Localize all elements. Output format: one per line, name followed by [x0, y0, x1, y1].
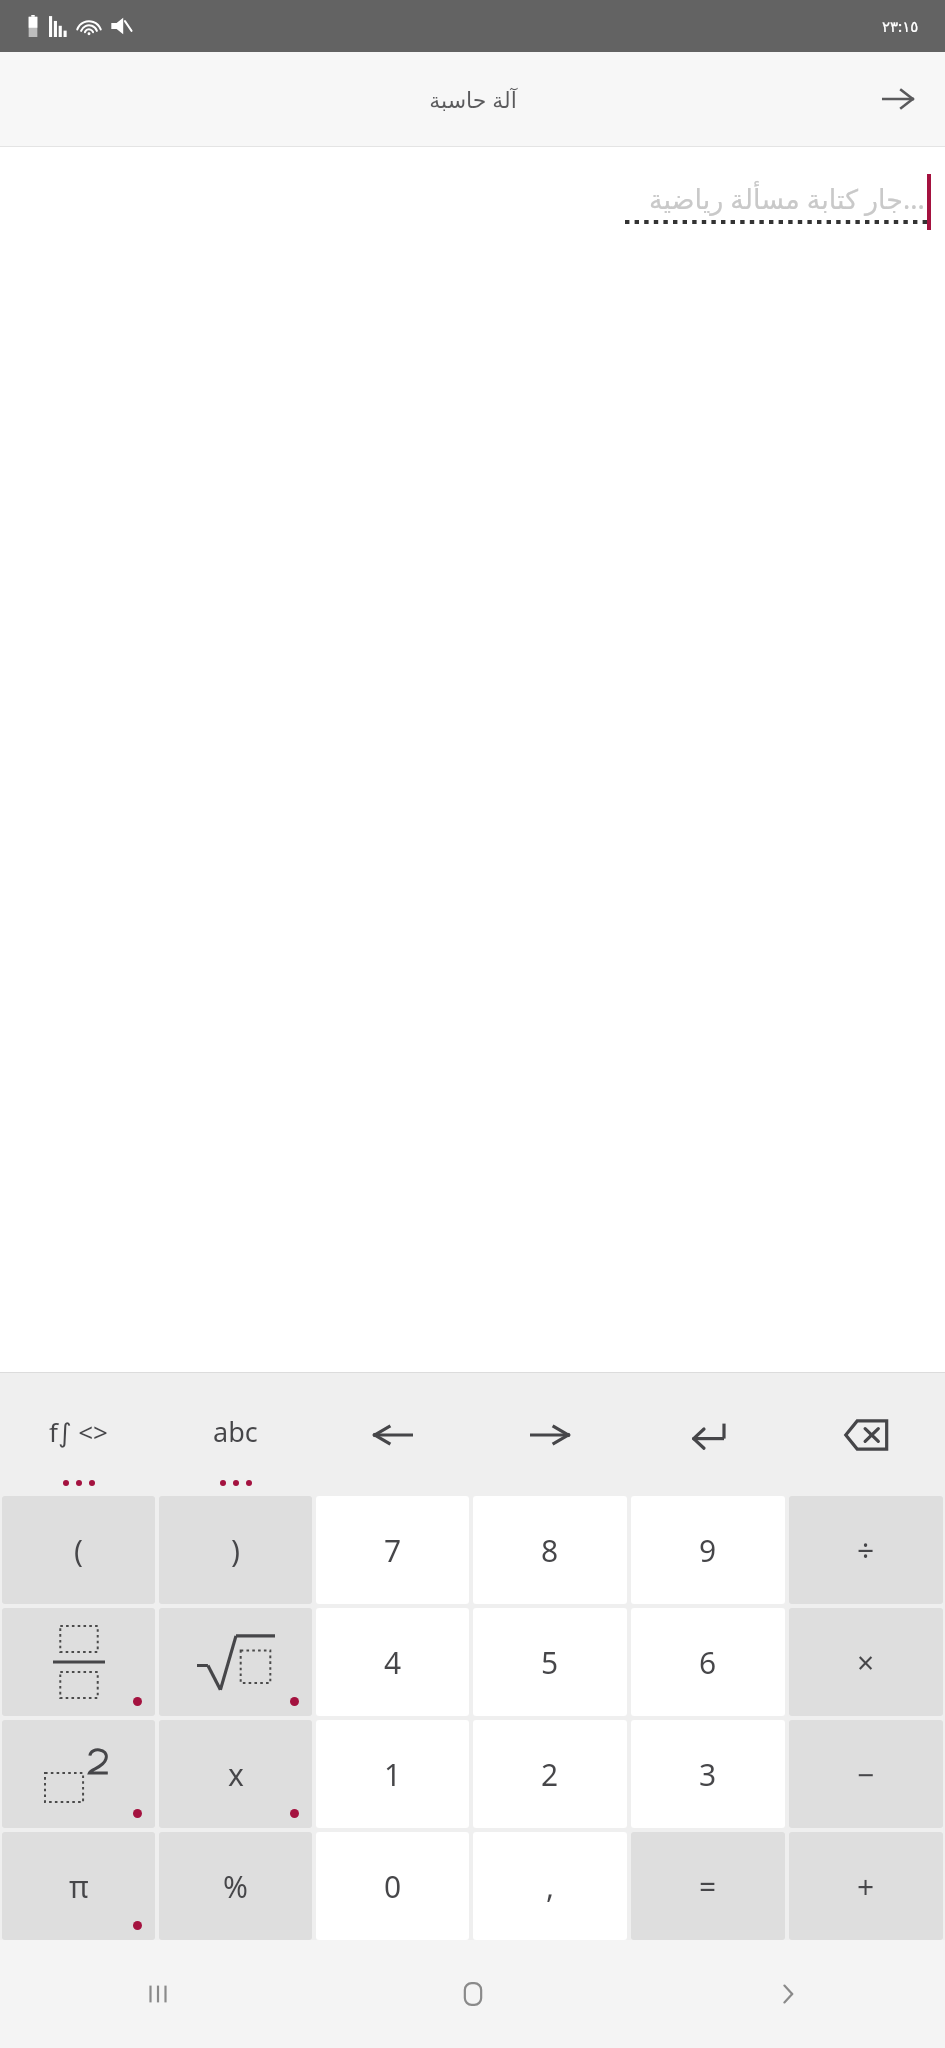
button[interactable]: (	[2, 1496, 155, 1604]
staticText: ×	[857, 1642, 875, 1683]
staticText: 1	[384, 1754, 402, 1795]
button[interactable]: Recents	[0, 1940, 315, 2048]
button[interactable]: Home	[315, 1940, 630, 2048]
button[interactable]: 7	[316, 1496, 469, 1604]
button[interactable]: Fraction	[2, 1608, 155, 1716]
button[interactable]: =	[631, 1832, 785, 1940]
staticText: x	[228, 1754, 244, 1795]
button[interactable]: Enter	[629, 1373, 787, 1496]
staticText: −	[857, 1754, 875, 1795]
button[interactable]: Square	[2, 1720, 155, 1828]
staticText: آلة حاسبة	[429, 84, 517, 114]
staticText: π	[69, 1866, 89, 1907]
button[interactable]: 3	[631, 1720, 785, 1828]
button[interactable]: x	[159, 1720, 312, 1828]
button[interactable]: +	[789, 1832, 943, 1940]
button[interactable]: 2	[473, 1720, 627, 1828]
staticText: ٢٣:١٥	[882, 16, 919, 36]
button[interactable]: −	[789, 1720, 943, 1828]
staticText: 7	[384, 1530, 402, 1571]
staticText: 9	[699, 1530, 717, 1571]
staticText: 6	[699, 1642, 717, 1683]
button[interactable]: f∫ <>	[0, 1373, 157, 1496]
button[interactable]: 5	[473, 1608, 627, 1716]
staticText: f∫ <>	[49, 1414, 108, 1449]
staticText: abc	[213, 1413, 258, 1450]
staticText: (	[74, 1530, 83, 1571]
button[interactable]: ×	[789, 1608, 943, 1716]
staticText: 4	[384, 1642, 402, 1683]
button[interactable]: 9	[631, 1496, 785, 1604]
button[interactable]: 4	[316, 1608, 469, 1716]
button[interactable]: Back	[630, 1940, 945, 2048]
button[interactable]: Next	[867, 68, 929, 130]
staticText: جار كتابة مسألة رياضية...	[649, 180, 925, 217]
staticText: +	[857, 1866, 875, 1907]
button[interactable]: 0	[316, 1832, 469, 1940]
button[interactable]: ÷	[789, 1496, 943, 1604]
button[interactable]: Move right	[471, 1373, 629, 1496]
button[interactable]: 1	[316, 1720, 469, 1828]
button[interactable]: %	[159, 1832, 312, 1940]
staticText: )	[231, 1530, 240, 1571]
staticText: ,	[546, 1866, 555, 1907]
staticText: 5	[541, 1642, 559, 1683]
staticText: =	[699, 1866, 717, 1907]
button[interactable]: ,	[473, 1832, 627, 1940]
staticText: 8	[541, 1530, 559, 1571]
button[interactable]: Backspace	[787, 1373, 945, 1496]
staticText: 3	[699, 1754, 717, 1795]
button[interactable]: )	[159, 1496, 312, 1604]
button[interactable]: abc	[157, 1373, 314, 1496]
staticText: 0	[384, 1866, 402, 1907]
staticText: %	[223, 1866, 248, 1907]
button[interactable]: Square root	[159, 1608, 312, 1716]
button[interactable]: 6	[631, 1608, 785, 1716]
staticText: ÷	[857, 1530, 875, 1571]
staticText: 2	[541, 1754, 559, 1795]
button[interactable]: π	[2, 1832, 155, 1940]
button[interactable]: 8	[473, 1496, 627, 1604]
button[interactable]: Move left	[314, 1373, 471, 1496]
